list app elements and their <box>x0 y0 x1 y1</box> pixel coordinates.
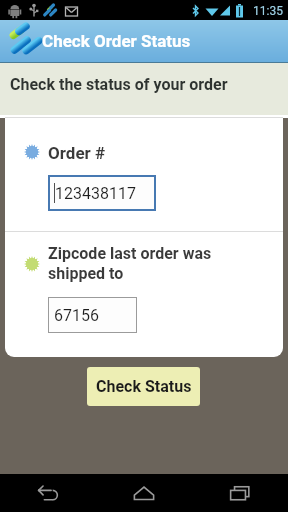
button[interactable]: Recent apps <box>192 474 288 512</box>
staticText: Check Status <box>96 377 192 396</box>
staticText: 11:35 <box>253 4 283 18</box>
staticText: 67156 <box>54 306 99 325</box>
staticText: Check the status of your order <box>10 75 228 94</box>
button[interactable]: 123438117 <box>48 175 156 211</box>
staticText: Zipcode last order was shipped to <box>48 244 212 283</box>
button[interactable]: 67156 <box>48 297 137 333</box>
staticText: 123438117 <box>55 184 136 203</box>
staticText: Order # <box>48 143 106 163</box>
button[interactable]: Back <box>0 474 96 512</box>
staticText: Check Order Status <box>42 31 191 51</box>
button[interactable]: Home <box>96 474 192 512</box>
button[interactable]: Check Status <box>87 367 200 406</box>
